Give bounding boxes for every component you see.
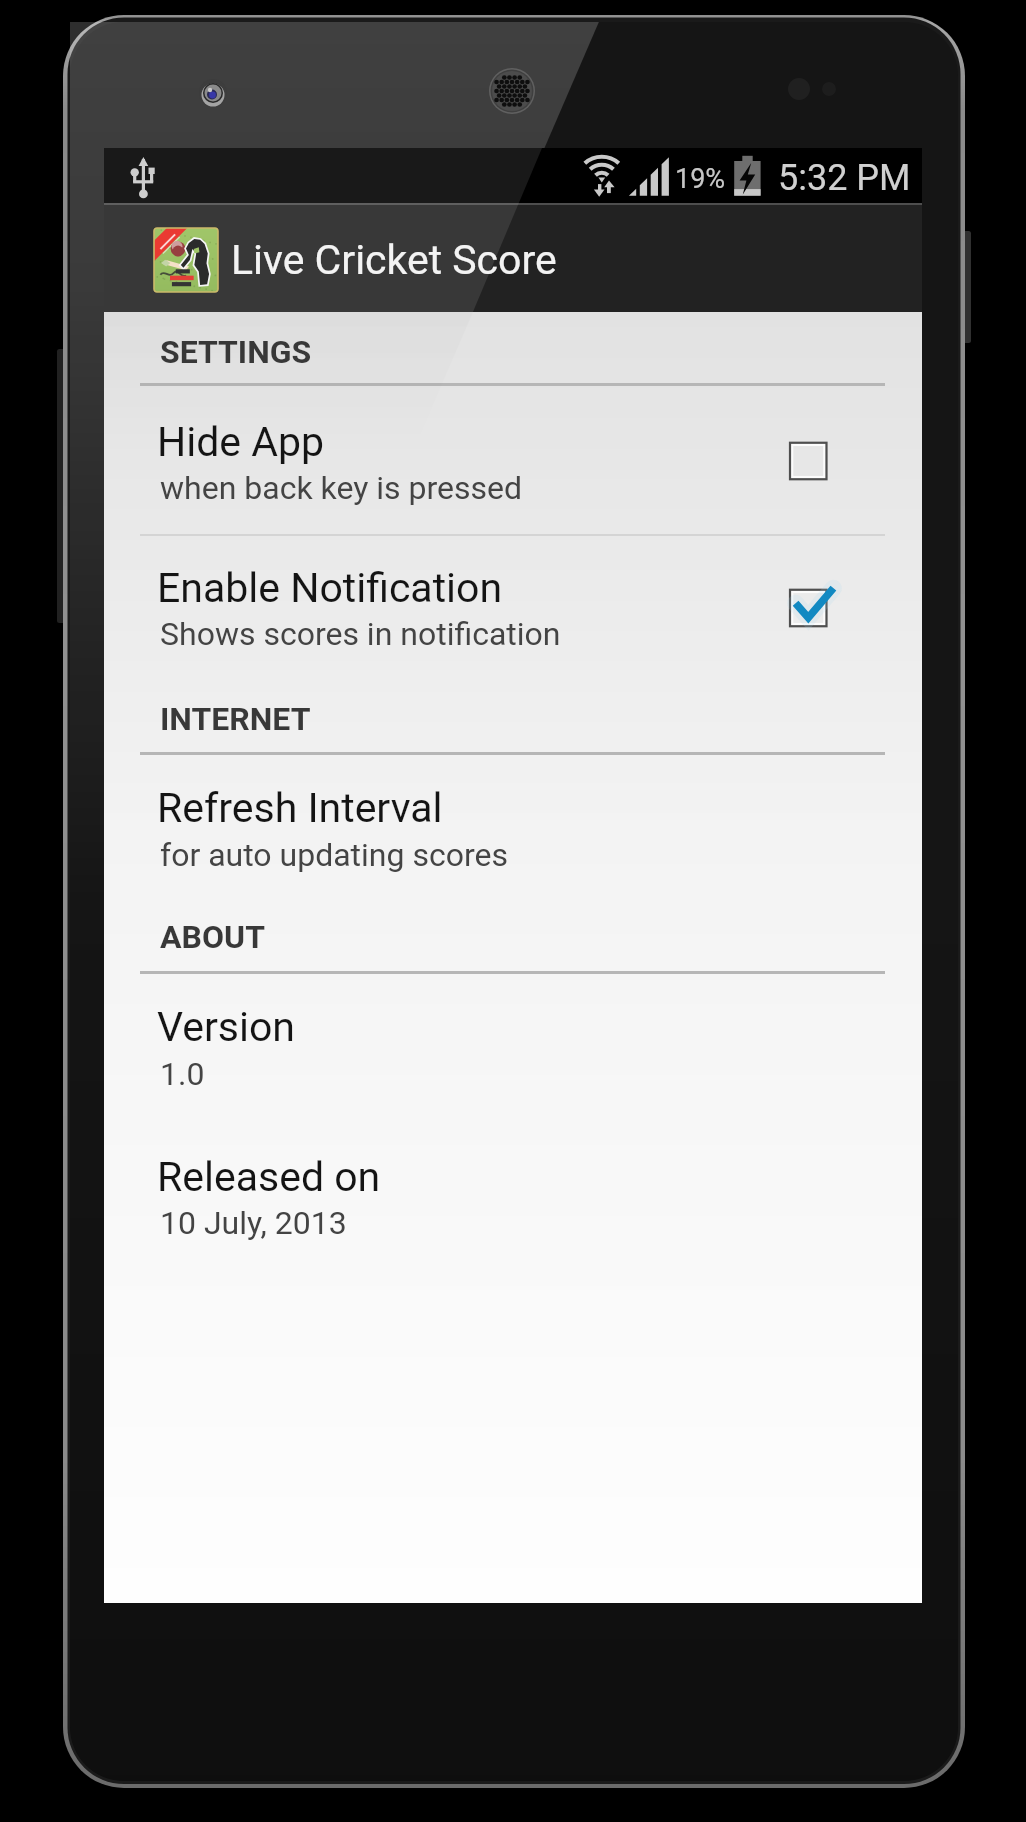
staticText: Refresh Interval	[157, 784, 443, 832]
staticText: INTERNET	[160, 700, 311, 738]
staticText: Shows scores in notification	[160, 615, 561, 653]
staticText: Hide App	[157, 418, 325, 466]
staticText: SETTINGS	[160, 333, 312, 371]
staticText: when back key is pressed	[160, 469, 523, 507]
button[interactable]: Refresh Interval	[104, 765, 922, 905]
staticText: 10 July, 2013	[160, 1204, 347, 1242]
staticText: 5:32 PM	[778, 157, 911, 199]
button[interactable]: Hide App	[104, 400, 922, 534]
staticText: ABOUT	[160, 918, 265, 956]
button[interactable]: Enable Notification	[104, 540, 922, 690]
button[interactable]: Released on	[104, 1135, 922, 1270]
staticText: for auto updating scores	[160, 836, 508, 874]
button[interactable]: Version	[104, 985, 922, 1120]
staticText: 1.0	[160, 1055, 205, 1093]
staticText: Enable Notification	[157, 564, 503, 612]
staticText: Live Cricket Score	[231, 236, 557, 284]
button[interactable]: Disabled	[768, 421, 848, 501]
staticText: 19%	[675, 163, 726, 195]
staticText: Released on	[157, 1153, 381, 1201]
button[interactable]: Enabled	[768, 568, 848, 648]
staticText: Version	[157, 1003, 296, 1051]
